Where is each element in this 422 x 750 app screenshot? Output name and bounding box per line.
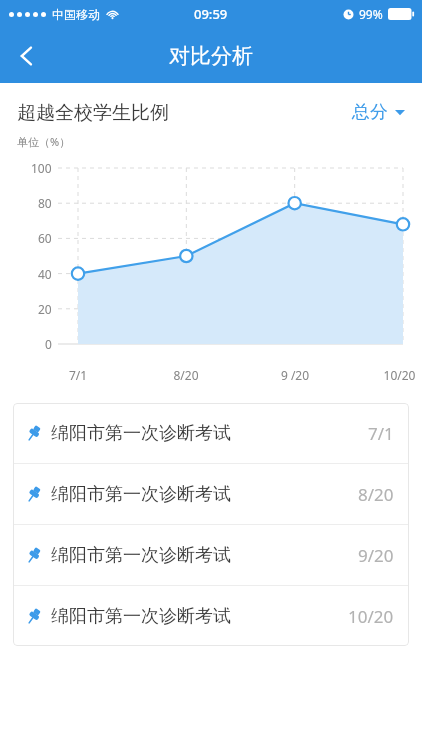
- button[interactable]: 绵阳市第一次诊断考试: [13, 525, 409, 585]
- staticText: 20: [38, 301, 52, 317]
- staticText: 总分: [352, 101, 388, 124]
- staticText: 9/20: [358, 544, 394, 567]
- staticText: 中国移动: [52, 7, 100, 22]
- staticText: 绵阳市第一次诊断考试: [51, 483, 231, 506]
- staticText: 8/20: [160, 367, 212, 383]
- staticText: 单位（%）: [17, 134, 71, 149]
- button[interactable]: 总分: [350, 97, 407, 128]
- staticText: 40: [38, 266, 52, 282]
- staticText: 10/20: [377, 367, 422, 383]
- staticText: 绵阳市第一次诊断考试: [51, 422, 231, 445]
- staticText: 0: [45, 336, 52, 352]
- button[interactable]: Back: [0, 29, 54, 83]
- button[interactable]: 绵阳市第一次诊断考试: [13, 403, 409, 463]
- button[interactable]: 绵阳市第一次诊断考试: [13, 586, 409, 646]
- staticText: 100: [31, 160, 52, 176]
- staticText: 绵阳市第一次诊断考试: [51, 605, 231, 628]
- staticText: 09:59: [194, 5, 228, 23]
- staticText: 99%: [359, 6, 383, 22]
- staticText: 60: [38, 230, 52, 246]
- staticText: 80: [38, 195, 52, 211]
- staticText: 7/1: [52, 367, 104, 383]
- staticText: 9 /20: [269, 367, 321, 383]
- staticText: 7/1: [368, 422, 394, 445]
- staticText: 8/20: [358, 483, 394, 506]
- button[interactable]: 绵阳市第一次诊断考试: [13, 464, 409, 524]
- staticText: 绵阳市第一次诊断考试: [51, 544, 231, 567]
- staticText: 10/20: [348, 605, 394, 628]
- staticText: 超越全校学生比例: [17, 101, 169, 125]
- staticText: 对比分析: [169, 43, 253, 69]
